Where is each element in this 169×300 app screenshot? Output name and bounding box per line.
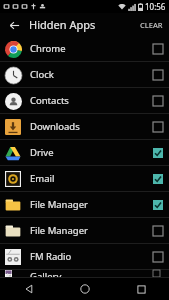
button[interactable]: Drive	[0, 140, 169, 166]
button[interactable]: Contacts	[0, 88, 169, 114]
staticText: Chrome	[30, 42, 153, 55]
staticText: File Manager	[30, 224, 153, 237]
button[interactable]: Back	[0, 278, 57, 300]
staticText: Email	[30, 172, 153, 185]
button[interactable]: Email	[0, 166, 169, 192]
button[interactable]: FM Radio	[0, 244, 169, 270]
button[interactable]: Gallery	[0, 270, 169, 278]
button[interactable]: Home	[57, 278, 113, 300]
button[interactable]: Back	[5, 16, 23, 34]
staticText: Downloads	[30, 120, 153, 133]
staticText: File Manager	[30, 198, 153, 211]
button[interactable]: Clock	[0, 62, 169, 88]
staticText: Contacts	[30, 94, 153, 107]
button[interactable]: CLEAR	[140, 20, 163, 30]
button[interactable]: Recent apps	[113, 278, 169, 300]
staticText: Hidden Apps	[29, 17, 96, 32]
button[interactable]: File Manager	[0, 192, 169, 218]
staticText: FM Radio	[30, 250, 153, 263]
button[interactable]: File Manager	[0, 218, 169, 244]
button[interactable]: Chrome	[0, 36, 169, 62]
staticText: 10:56	[145, 1, 166, 12]
staticText: Gallery	[30, 270, 153, 277]
staticText: Clock	[30, 68, 153, 81]
staticText: Drive	[30, 146, 153, 159]
staticText: CLEAR	[140, 20, 163, 30]
button[interactable]: Downloads	[0, 114, 169, 140]
